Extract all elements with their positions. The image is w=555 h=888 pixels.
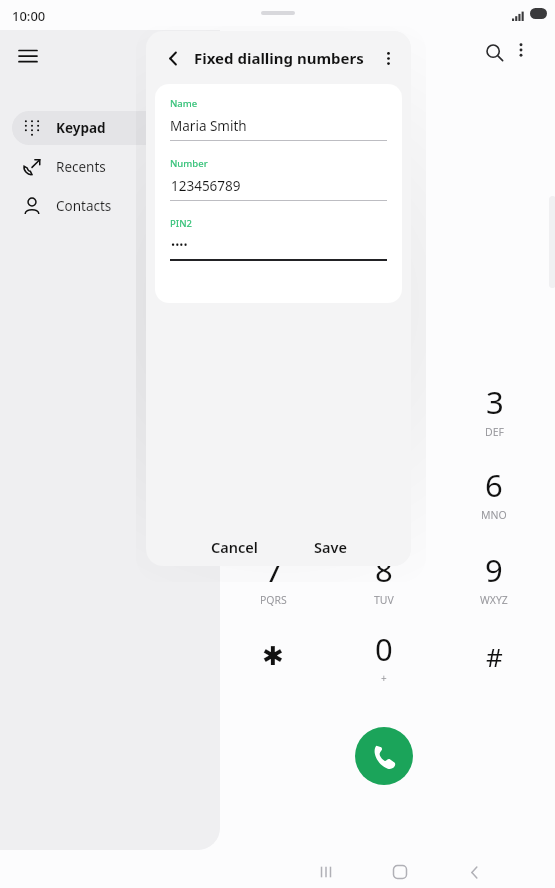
staticText: Cancel [211,537,258,557]
staticText: PQRS [260,593,287,607]
staticText: ✱ [262,641,284,671]
button[interactable]: Menu [10,38,46,74]
staticText: 7 [265,549,283,591]
button[interactable]: Cancel [184,528,284,566]
staticText: 3 [486,381,504,423]
staticText: 10:00 [12,7,46,25]
staticText: 123456789 [171,177,241,195]
button[interactable]: Back [158,43,188,73]
button[interactable]: 7 [227,539,319,617]
staticText: 0 [375,628,393,670]
staticText: # [486,639,503,674]
button[interactable]: Save [285,528,375,566]
button[interactable]: 3 [448,371,540,449]
staticText: Keypad [56,119,106,137]
staticText: 6 [485,464,503,506]
staticText: + [381,671,387,685]
staticText: •••• [171,237,188,252]
staticText: 9 [485,549,503,591]
button[interactable]: More options [505,34,537,66]
staticText: PIN2 [170,217,192,230]
button[interactable]: Home [382,854,418,888]
staticText: Contacts [56,197,112,215]
staticText: Save [314,537,347,557]
button[interactable]: Recent apps [308,854,344,888]
button[interactable]: Search [476,34,512,70]
button[interactable]: 9 [448,539,540,617]
staticText: WXYZ [480,593,508,607]
button[interactable]: Keypad [12,111,208,145]
staticText: MNO [481,508,507,522]
staticText: Number [170,157,208,170]
staticText: Maria Smith [170,117,247,135]
button[interactable]: More options [373,43,403,73]
button[interactable]: ✱ [227,617,319,695]
button[interactable]: Contacts [12,189,208,223]
button[interactable]: Back [456,854,492,888]
staticText: DEF [485,425,504,439]
button[interactable]: 0 [338,617,430,695]
staticText: 8 [375,549,393,591]
button[interactable]: 6 [448,454,540,532]
staticText: Fixed dialling numbers [194,48,364,68]
button[interactable]: Call [355,727,413,785]
button[interactable]: 8 [338,539,430,617]
button[interactable]: # [448,617,540,695]
staticText: TUV [374,593,394,607]
button[interactable]: Recents [12,150,208,184]
staticText: Name [170,97,198,110]
staticText: Recents [56,158,106,176]
